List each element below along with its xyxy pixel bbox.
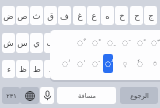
button[interactable]: ت bbox=[87, 33, 100, 53]
button[interactable]: ◌ٰ bbox=[75, 54, 85, 73]
staticText: ◌ً bbox=[137, 39, 143, 47]
button[interactable]: ه bbox=[101, 6, 114, 25]
staticText: ◌ٖ bbox=[123, 60, 127, 68]
button[interactable]: ج bbox=[144, 6, 157, 25]
staticText: ع bbox=[91, 11, 97, 21]
staticText: ◌ُ bbox=[105, 60, 111, 68]
staticText: ء bbox=[7, 64, 11, 74]
button[interactable]: ر bbox=[87, 60, 100, 78]
button[interactable]: ◌ٗ bbox=[135, 54, 145, 73]
button[interactable]: ◌ٖ bbox=[120, 54, 130, 73]
button[interactable]: ع bbox=[87, 6, 100, 25]
staticText: ◌ٌ bbox=[77, 39, 83, 47]
staticText: ◌ُ bbox=[62, 60, 68, 68]
staticText: ا bbox=[78, 38, 81, 48]
button[interactable]: ط bbox=[144, 33, 157, 53]
staticText: س bbox=[17, 38, 28, 48]
button[interactable]: ط bbox=[30, 60, 43, 78]
button[interactable]: ◌ُ bbox=[60, 54, 70, 73]
button[interactable]: ظ bbox=[16, 60, 29, 78]
button[interactable]: ة bbox=[115, 60, 128, 78]
staticText: ج bbox=[148, 11, 154, 21]
button[interactable]: ◌ٌ bbox=[75, 33, 85, 52]
staticText: م bbox=[119, 38, 125, 48]
staticText: ض bbox=[3, 11, 14, 21]
button[interactable]: ث bbox=[30, 6, 43, 25]
button[interactable]: ء bbox=[2, 60, 15, 78]
button[interactable]: ك bbox=[130, 33, 143, 53]
staticText: غ bbox=[77, 11, 83, 21]
staticText: د bbox=[63, 64, 67, 74]
staticText: ٢٣١ bbox=[6, 92, 17, 100]
staticText: ر bbox=[91, 64, 96, 74]
button[interactable]: ◌ً bbox=[135, 33, 145, 52]
button[interactable]: ◌ُ bbox=[103, 54, 113, 73]
staticText: ط bbox=[33, 64, 41, 74]
button[interactable]: ◌ِ bbox=[105, 33, 115, 52]
button[interactable]: د bbox=[58, 60, 71, 78]
staticText: ت bbox=[89, 38, 98, 48]
staticText: ف bbox=[60, 11, 69, 21]
staticText: ذ bbox=[49, 64, 53, 74]
staticText: ك bbox=[133, 38, 141, 48]
staticText: ◌َ bbox=[122, 39, 128, 47]
button[interactable]: ن bbox=[101, 33, 114, 53]
button[interactable]: ◌ْ bbox=[90, 33, 100, 52]
button[interactable]: Voice input bbox=[40, 87, 54, 104]
staticText: ◌ِ bbox=[107, 39, 113, 47]
staticText: ة bbox=[119, 64, 124, 74]
button[interactable]: الرجوع bbox=[120, 87, 158, 104]
button[interactable]: ض bbox=[2, 6, 15, 25]
staticText: ز bbox=[77, 64, 82, 74]
staticText: ◌ّ bbox=[151, 39, 157, 47]
button[interactable]: لا bbox=[144, 60, 157, 78]
staticText: ي bbox=[33, 38, 40, 48]
staticText: مسافة bbox=[78, 92, 96, 100]
staticText: الرجوع bbox=[130, 92, 149, 100]
button[interactable]: Change language bbox=[20, 87, 39, 104]
staticText: ظ bbox=[19, 64, 27, 74]
button[interactable]: م bbox=[115, 33, 128, 53]
button[interactable]: و bbox=[101, 60, 114, 78]
staticText: ث bbox=[32, 11, 41, 21]
button[interactable]: ز bbox=[73, 60, 86, 78]
staticText: ه bbox=[105, 11, 110, 21]
button[interactable]: ٢٣١ bbox=[2, 87, 20, 104]
button[interactable]: ب bbox=[44, 33, 57, 53]
staticText: ◌ٗ bbox=[137, 60, 143, 68]
staticText: ش bbox=[3, 38, 14, 48]
button[interactable]: غ bbox=[73, 6, 86, 25]
button[interactable]: ح bbox=[130, 6, 143, 25]
button[interactable]: ◌َ bbox=[120, 33, 130, 52]
staticText: خ bbox=[119, 11, 125, 21]
button[interactable]: ذ bbox=[44, 60, 57, 78]
staticText: ◌ٰ bbox=[77, 60, 83, 68]
staticText: ◌٘ bbox=[153, 60, 157, 68]
staticText: ◌ْ bbox=[92, 39, 98, 47]
button[interactable]: ى bbox=[130, 60, 143, 78]
button[interactable]: خ bbox=[115, 6, 128, 25]
button[interactable]: ق bbox=[44, 6, 57, 25]
staticText: ◌ٓ bbox=[92, 60, 98, 68]
button[interactable]: ش bbox=[2, 33, 15, 53]
staticText: ط bbox=[147, 38, 155, 48]
button[interactable]: ا bbox=[73, 33, 86, 53]
button[interactable]: ص bbox=[16, 6, 29, 25]
staticText: ب bbox=[46, 38, 55, 48]
button[interactable]: ◌٘ bbox=[150, 54, 160, 73]
staticText: ق bbox=[47, 11, 54, 21]
button[interactable]: مسافة bbox=[57, 87, 116, 104]
button[interactable]: س bbox=[16, 33, 29, 53]
button[interactable]: ◌ٓ bbox=[90, 54, 100, 73]
staticText: ح bbox=[134, 11, 140, 21]
staticText: ص bbox=[17, 11, 28, 21]
staticText: ى bbox=[133, 64, 140, 74]
staticText: و bbox=[105, 64, 110, 74]
button[interactable]: ي bbox=[30, 33, 43, 53]
button[interactable]: ◌ّ bbox=[149, 33, 159, 52]
button[interactable]: ف bbox=[58, 6, 71, 25]
staticText: ن bbox=[104, 38, 111, 48]
